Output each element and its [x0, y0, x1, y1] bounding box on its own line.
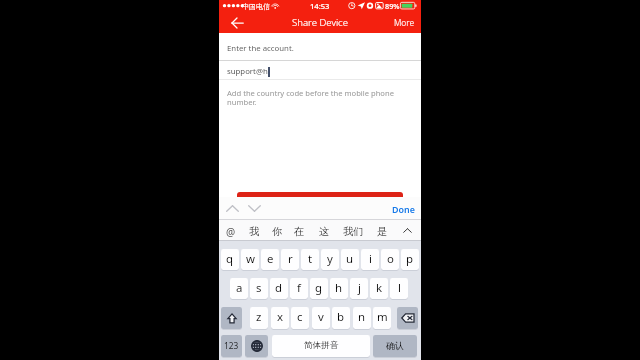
- button[interactable]: t: [301, 249, 319, 270]
- button[interactable]: 我: [249, 220, 260, 241]
- staticText: 123: [224, 340, 239, 351]
- button[interactable]: n: [353, 307, 371, 329]
- button[interactable]: [221, 307, 242, 329]
- button[interactable]: 是: [377, 220, 388, 241]
- staticText: k: [376, 280, 383, 296]
- other: Switch keyboard: [245, 335, 268, 358]
- staticText: @: [226, 225, 236, 239]
- staticText: Add the country code before the mobile p…: [227, 88, 394, 107]
- staticText: i: [369, 251, 372, 267]
- button[interactable]: Back: [224, 12, 250, 33]
- staticText: h: [335, 280, 343, 296]
- other: Backspace: [397, 307, 418, 330]
- button[interactable]: r: [281, 249, 299, 270]
- button[interactable]: u: [341, 249, 359, 270]
- button[interactable]: [245, 335, 268, 357]
- staticText: 确认: [386, 340, 404, 351]
- staticText: 你: [272, 225, 283, 238]
- button[interactable]: 我们: [342, 220, 365, 241]
- button[interactable]: q: [221, 249, 239, 270]
- button[interactable]: Done: [385, 197, 421, 220]
- button[interactable]: z: [250, 307, 268, 329]
- button[interactable]: More candidates: [399, 220, 416, 241]
- button[interactable]: e: [261, 249, 279, 270]
- button[interactable]: Enter the account.: [219, 33, 421, 60]
- button[interactable]: b: [332, 307, 350, 329]
- button[interactable]: s: [250, 278, 268, 299]
- other: Shift: [221, 307, 242, 330]
- button[interactable]: m: [373, 307, 391, 329]
- staticText: f: [297, 280, 301, 296]
- staticText: 简体拼音: [304, 340, 339, 351]
- button[interactable]: 简体拼音: [272, 335, 370, 357]
- staticText: j: [358, 280, 361, 296]
- button[interactable]: 确认: [373, 335, 417, 357]
- button[interactable]: i: [361, 249, 379, 270]
- button[interactable]: 123: [221, 335, 242, 357]
- button[interactable]: Previous field: [222, 197, 243, 220]
- staticText: 是: [377, 225, 388, 238]
- staticText: p: [406, 251, 414, 267]
- staticText: m: [377, 309, 388, 325]
- staticText: u: [346, 251, 354, 267]
- staticText: n: [358, 309, 366, 325]
- staticText: 这: [319, 225, 330, 238]
- button[interactable]: a: [230, 278, 248, 299]
- staticText: 在: [294, 225, 305, 238]
- button[interactable]: 这: [319, 220, 330, 241]
- staticText: 中国电信: [242, 2, 270, 11]
- staticText: 14:53: [310, 1, 330, 11]
- staticText: 我们: [343, 225, 364, 238]
- button[interactable]: k: [370, 278, 388, 299]
- staticText: t: [308, 251, 313, 267]
- button[interactable]: w: [241, 249, 259, 270]
- staticText: g: [315, 280, 323, 296]
- staticText: Enter the account.: [227, 43, 294, 54]
- staticText: v: [318, 309, 324, 325]
- button[interactable]: [397, 307, 418, 329]
- staticText: z: [256, 309, 262, 325]
- button[interactable]: support@h: [219, 61, 421, 80]
- button[interactable]: p: [401, 249, 419, 270]
- staticText: l: [398, 280, 401, 296]
- staticText: x: [277, 309, 284, 325]
- button[interactable]: Next field: [244, 197, 265, 220]
- button[interactable]: d: [270, 278, 288, 299]
- staticText: w: [246, 251, 255, 267]
- staticText: e: [267, 251, 274, 267]
- staticText: support@h: [227, 66, 268, 77]
- button[interactable]: 在: [294, 220, 305, 241]
- staticText: Done: [392, 203, 415, 215]
- button[interactable]: x: [271, 307, 289, 329]
- staticText: 89%: [385, 1, 400, 11]
- button[interactable]: v: [312, 307, 330, 329]
- staticText: a: [236, 280, 243, 296]
- staticText: q: [226, 251, 234, 267]
- button[interactable]: 你: [272, 220, 283, 241]
- button[interactable]: j: [350, 278, 368, 299]
- staticText: o: [387, 251, 394, 267]
- button[interactable]: y: [321, 249, 339, 270]
- button[interactable]: o: [381, 249, 399, 270]
- staticText: b: [337, 309, 345, 325]
- staticText: Share Device: [292, 16, 348, 29]
- staticText: 我: [249, 225, 260, 238]
- button[interactable]: [237, 192, 403, 198]
- staticText: More: [394, 17, 415, 28]
- button[interactable]: @: [225, 220, 237, 241]
- button[interactable]: h: [330, 278, 348, 299]
- staticText: d: [275, 280, 283, 296]
- button[interactable]: f: [290, 278, 308, 299]
- button[interactable]: g: [310, 278, 328, 299]
- staticText: s: [256, 280, 262, 296]
- staticText: c: [297, 309, 303, 325]
- staticText: r: [288, 251, 293, 267]
- button[interactable]: More: [388, 12, 421, 33]
- button[interactable]: l: [390, 278, 408, 299]
- staticText: y: [327, 251, 333, 267]
- button[interactable]: c: [291, 307, 309, 329]
